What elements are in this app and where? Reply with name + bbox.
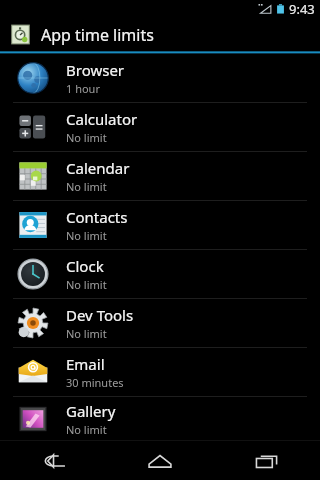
staticText: Clock (66, 256, 104, 276)
staticText: No limit (66, 228, 107, 243)
staticText: Dev Tools (66, 305, 134, 325)
staticText: Calendar (66, 158, 130, 178)
staticText: No limit (66, 277, 107, 292)
button[interactable]: Browser (0, 54, 320, 102)
staticText: No limit (66, 179, 107, 194)
button[interactable]: Recent apps (213, 441, 320, 480)
button[interactable]: Calendar (0, 152, 320, 200)
staticText: Email (66, 354, 105, 374)
staticText: Calculator (66, 109, 138, 129)
button[interactable]: Clock (0, 250, 320, 298)
staticText: 30 minutes (66, 375, 124, 390)
button[interactable]: Dev Tools (0, 299, 320, 347)
button[interactable]: Calculator (0, 103, 320, 151)
button[interactable]: Contacts (0, 201, 320, 249)
button[interactable]: Back (0, 441, 106, 480)
staticText: App time limits (41, 24, 154, 46)
staticText: No limit (66, 130, 107, 145)
button[interactable]: Home (106, 441, 213, 480)
button[interactable]: Email (0, 348, 320, 396)
button[interactable]: Gallery (0, 397, 320, 440)
staticText: Gallery (66, 401, 116, 421)
staticText: No limit (66, 326, 107, 341)
staticText: Browser (66, 60, 125, 80)
staticText: 1 hour (66, 81, 100, 96)
staticText: No limit (66, 422, 107, 437)
staticText: 9:43 (289, 0, 315, 18)
staticText: Contacts (66, 207, 128, 227)
